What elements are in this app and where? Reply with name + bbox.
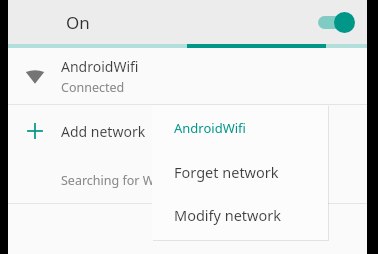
staticText: On bbox=[66, 11, 90, 34]
button[interactable]: AndroidWifi bbox=[8, 48, 367, 104]
button[interactable]: Forget network bbox=[152, 150, 328, 193]
staticText: Modify network bbox=[174, 205, 282, 225]
staticText: Forget network bbox=[174, 162, 279, 182]
staticText: Searching for Wi‑Fi networks… bbox=[61, 172, 239, 189]
button[interactable]: Add network bbox=[8, 105, 367, 157]
button[interactable]: Modify network bbox=[152, 193, 328, 236]
staticText: Connected bbox=[61, 79, 125, 96]
staticText: Add network bbox=[61, 122, 146, 141]
button[interactable]: AndroidWifi bbox=[152, 105, 328, 150]
staticText: AndroidWifi bbox=[174, 119, 246, 137]
staticText: AndroidWifi bbox=[61, 57, 139, 76]
button[interactable]: Wi-Fi on/off bbox=[311, 8, 355, 36]
